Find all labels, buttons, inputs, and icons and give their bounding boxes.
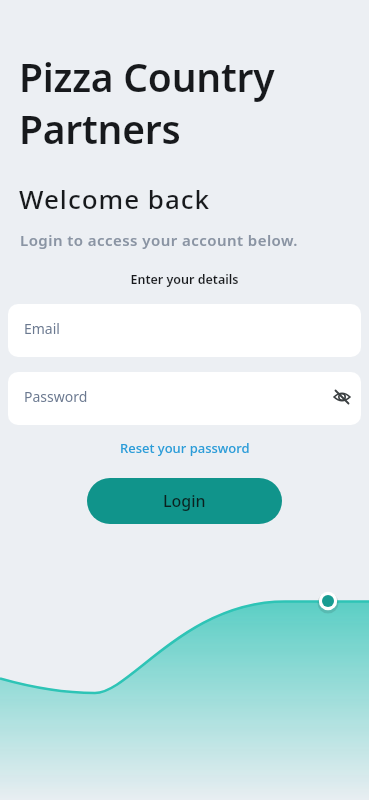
staticText: Email: [24, 319, 60, 338]
staticText: Pizza Country Partners: [19, 50, 275, 155]
staticText: Login: [163, 490, 206, 512]
button[interactable]: Reset your password: [0, 439, 369, 457]
staticText: Password: [24, 387, 88, 406]
staticText: Reset your password: [120, 439, 250, 457]
staticText: Welcome back: [19, 181, 211, 216]
staticText: Enter your details: [0, 271, 369, 288]
button[interactable]: Login: [87, 478, 282, 524]
button[interactable]: Email: [8, 304, 361, 357]
staticText: Login to access your account below.: [20, 230, 298, 250]
button[interactable]: Password: [8, 372, 361, 425]
